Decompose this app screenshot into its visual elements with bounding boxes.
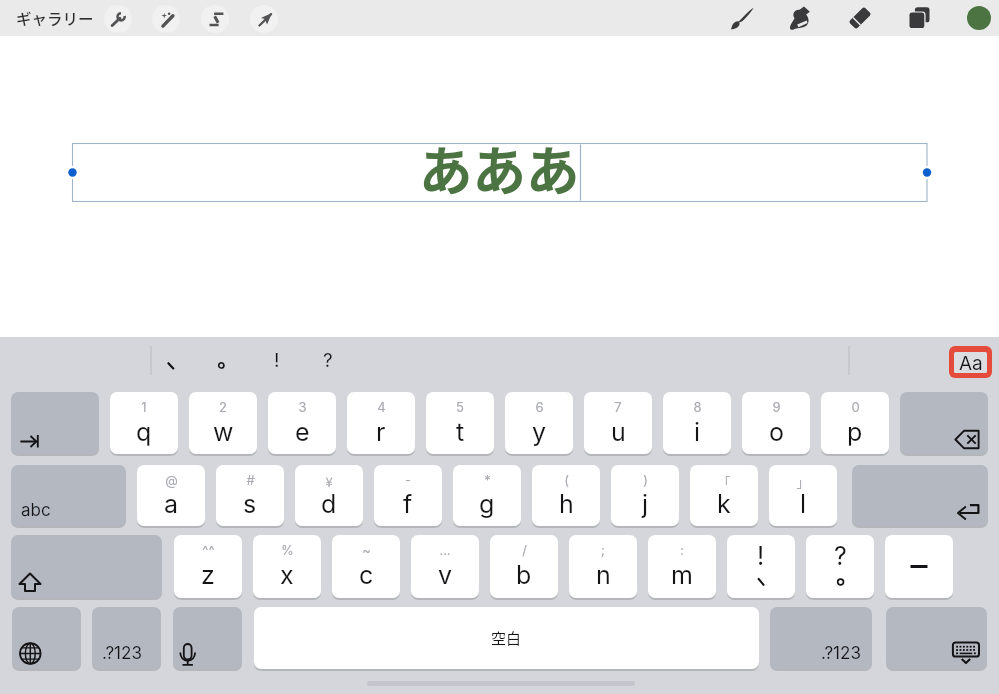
- staticText: 「: [717, 472, 731, 491]
- staticText: Aa: [959, 352, 983, 373]
- staticText: s: [243, 489, 257, 519]
- button[interactable]: Shift: [11, 535, 162, 598]
- button[interactable]: 3: [268, 392, 336, 454]
- staticText: r: [376, 417, 386, 447]
- button[interactable]: Change keyboard: [12, 607, 81, 669]
- staticText: w: [213, 417, 234, 447]
- staticText: ?: [834, 541, 847, 571]
- button[interactable]: *: [453, 465, 521, 526]
- button[interactable]: -: [374, 465, 442, 526]
- button[interactable]: !: [260, 344, 294, 377]
- button[interactable]: 」: [769, 465, 837, 526]
- button[interactable]: %: [253, 535, 321, 598]
- button[interactable]: /: [490, 535, 558, 598]
- button[interactable]: !: [727, 535, 795, 598]
- button[interactable]: 2: [189, 392, 257, 454]
- staticText: 5: [456, 399, 464, 415]
- button[interactable]: .?123: [770, 607, 872, 669]
- button[interactable]: Backspace: [900, 392, 988, 454]
- button[interactable]: 5: [426, 392, 494, 454]
- button[interactable]: 7: [584, 392, 652, 454]
- button[interactable]: Layers: [904, 2, 936, 34]
- staticText: a: [164, 489, 179, 519]
- staticText: あああ: [419, 129, 580, 206]
- button[interactable]: ¥: [295, 465, 363, 526]
- staticText: ギャラリー: [16, 7, 94, 29]
- staticText: 」: [796, 472, 810, 491]
- button[interactable]: Dictation: [173, 607, 242, 669]
- button[interactable]: :: [648, 535, 716, 598]
- button[interactable]: Aa: [949, 346, 992, 378]
- button[interactable]: abc: [11, 465, 126, 526]
- staticText: n: [596, 560, 611, 590]
- staticText: !: [274, 349, 280, 372]
- button[interactable]: #: [216, 465, 284, 526]
- staticText: i: [694, 417, 701, 447]
- staticText: @: [165, 472, 178, 488]
- staticText: p: [847, 417, 863, 447]
- button[interactable]: 「: [690, 465, 758, 526]
- button[interactable]: .?123: [92, 607, 161, 669]
- staticText: 2: [219, 399, 227, 415]
- button[interactable]: Tools: [104, 5, 132, 33]
- button[interactable]: Colour: [964, 3, 994, 33]
- staticText: .?123: [102, 643, 142, 664]
- button[interactable]: ?: [311, 344, 345, 377]
- button[interactable]: @: [137, 465, 205, 526]
- button[interactable]: Comma: [153, 349, 187, 373]
- button[interactable]: Tab: [11, 392, 99, 454]
- button[interactable]: 空白: [254, 607, 759, 669]
- staticText: b: [516, 560, 532, 590]
- button[interactable]: ?: [806, 535, 874, 598]
- button[interactable]: Full stop: [204, 349, 238, 373]
- staticText: f: [403, 489, 413, 519]
- staticText: d: [321, 489, 337, 519]
- staticText: 9: [772, 399, 781, 415]
- button[interactable]: Return: [852, 465, 988, 526]
- staticText: ?: [323, 349, 333, 372]
- staticText: .?123: [821, 643, 861, 664]
- button[interactable]: 0: [821, 392, 889, 454]
- staticText: q: [136, 417, 152, 447]
- button[interactable]: Move: [250, 5, 278, 33]
- staticText: -: [405, 472, 411, 488]
- button[interactable]: ...: [411, 535, 479, 598]
- button[interactable]: Eraser: [844, 2, 876, 34]
- staticText: 1: [141, 399, 147, 415]
- staticText: l: [800, 489, 807, 519]
- staticText: g: [479, 489, 495, 519]
- button[interactable]: ;: [569, 535, 637, 598]
- staticText: (: [564, 472, 569, 488]
- button[interactable]: 8: [663, 392, 731, 454]
- staticText: z: [201, 560, 215, 590]
- button[interactable]: ~: [332, 535, 400, 598]
- button[interactable]: 6: [505, 392, 573, 454]
- staticText: 0: [851, 399, 860, 415]
- staticText: 7: [614, 399, 622, 415]
- staticText: ¥: [325, 472, 333, 491]
- button[interactable]: Pen: [784, 2, 816, 34]
- button[interactable]: ^^: [174, 535, 242, 598]
- staticText: /: [522, 542, 527, 558]
- button[interactable]: 4: [347, 392, 415, 454]
- button[interactable]: 9: [742, 392, 810, 454]
- staticText: 3: [298, 399, 307, 415]
- staticText: x: [280, 560, 294, 590]
- staticText: #: [246, 472, 255, 488]
- button[interactable]: Hide keyboard: [886, 607, 987, 669]
- button[interactable]: (: [532, 465, 600, 526]
- staticText: ^^: [202, 542, 215, 558]
- button[interactable]: 1: [110, 392, 178, 454]
- staticText: y: [532, 417, 547, 447]
- button[interactable]: Long vowel mark: [885, 535, 953, 598]
- button[interactable]: ): [611, 465, 679, 526]
- staticText: j: [642, 489, 649, 519]
- staticText: c: [359, 560, 374, 590]
- staticText: e: [295, 417, 310, 447]
- button[interactable]: Transform: [201, 5, 229, 33]
- button[interactable]: ギャラリー: [8, 5, 102, 31]
- staticText: 4: [377, 399, 386, 415]
- button[interactable]: Brush: [726, 2, 758, 34]
- staticText: 6: [535, 399, 544, 415]
- button[interactable]: Magic wand: [152, 5, 180, 33]
